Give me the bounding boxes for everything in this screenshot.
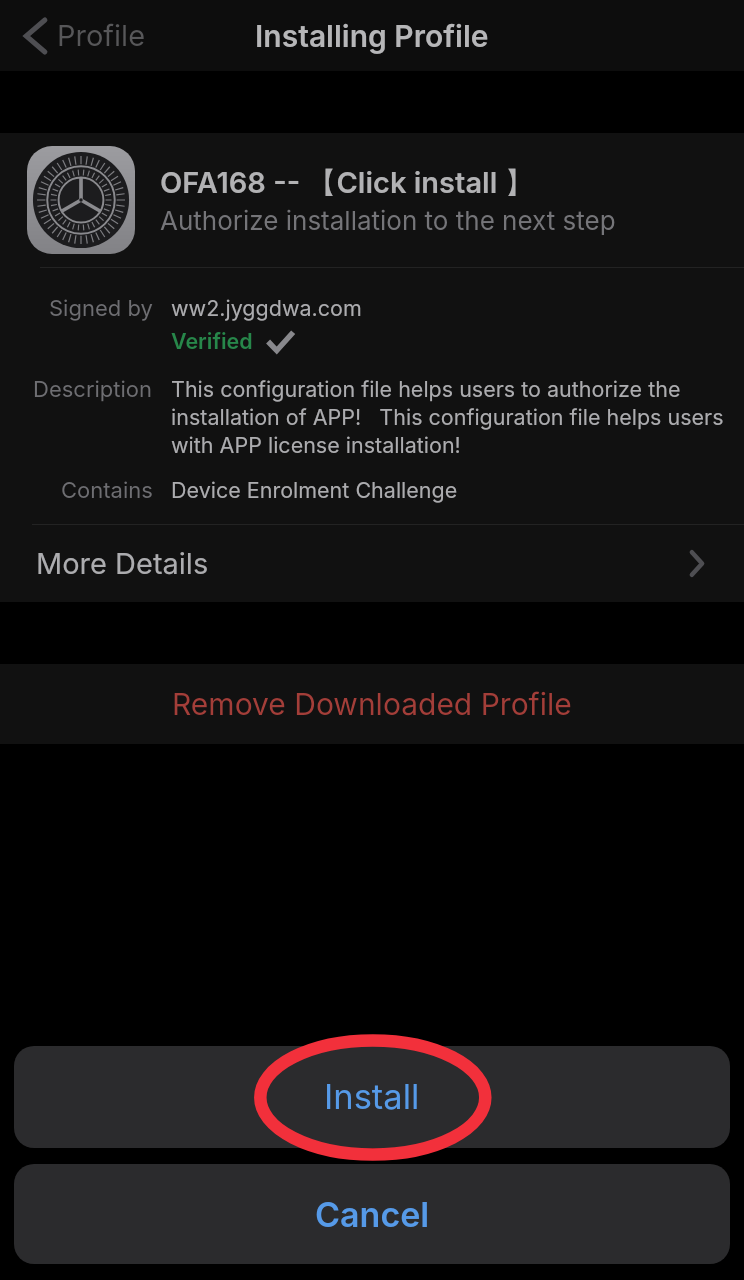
staticText: Signed by — [49, 295, 153, 322]
button[interactable]: Install — [14, 1046, 730, 1148]
staticText: Contains — [61, 477, 153, 504]
staticText: Verified — [171, 328, 253, 354]
staticText: This configuration file helps users to a… — [171, 376, 724, 458]
staticText: Authorize installation to the next step — [160, 205, 616, 236]
staticText: More Details — [36, 546, 209, 581]
button[interactable]: Cancel — [14, 1164, 730, 1264]
staticText: Remove Downloaded Profile — [172, 686, 572, 722]
staticText: ww2.jyggdwa.com — [171, 295, 362, 321]
staticText: Profile — [57, 18, 146, 53]
button[interactable]: More Details — [0, 525, 744, 602]
button[interactable]: Back — [16, 8, 154, 63]
staticText: Device Enrolment Challenge — [171, 477, 458, 503]
button[interactable]: Remove Downloaded Profile — [0, 664, 744, 744]
staticText: OFA168 -- 【Click install 】 — [160, 165, 534, 202]
other: More Details — [689, 550, 705, 577]
other: Back — [24, 19, 46, 53]
staticText: Description — [33, 376, 153, 403]
staticText: Cancel — [315, 1194, 430, 1235]
staticText: Install — [324, 1076, 420, 1118]
staticText: Installing Profile — [255, 18, 489, 54]
